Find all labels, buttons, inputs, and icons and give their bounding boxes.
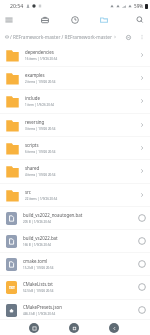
staticText: 20:54: [10, 2, 24, 9]
button[interactable]: include: [0, 90, 150, 114]
staticText: 1 item | 1/9/26 20:54: [25, 103, 54, 107]
staticText: build_vs2022.bat: [23, 235, 58, 241]
staticText: reversing: [25, 119, 45, 125]
staticText: TXT: [9, 286, 15, 290]
button[interactable]: shared: [0, 160, 150, 184]
button[interactable]: reversing: [0, 114, 150, 137]
staticText: examples: [25, 72, 45, 78]
staticText: / REFramework-master / REFramework-maste…: [10, 34, 112, 40]
button[interactable]: Menu: [0, 11, 18, 29]
button[interactable]: Select items: [122, 31, 134, 43]
staticText: build_vs2022_noautogen.bat: [23, 212, 83, 218]
button[interactable]: build_vs2022.bat: [0, 230, 150, 253]
staticText: shared: [25, 165, 40, 171]
staticText: 4 items | 1/9/26 20:54: [25, 173, 56, 177]
staticText: 52.5 kB | 1/9/26 20:54: [23, 289, 54, 293]
button[interactable]: dependencies: [0, 44, 150, 67]
button[interactable]: Search: [131, 11, 149, 29]
button[interactable]: Work profile: [36, 11, 54, 29]
staticText: cmake.toml: [23, 258, 48, 264]
staticText: CMakePresets.json: [23, 304, 62, 310]
button[interactable]: Home: [66, 320, 81, 335]
button[interactable]: Files: [95, 11, 113, 29]
staticText: include: [25, 95, 40, 101]
staticText: 166 B | 1/9/26 20:54: [23, 243, 52, 247]
staticText: 3 items | 1/9/26 20:54: [25, 127, 56, 131]
staticText: 2 items | 1/9/26 20:54: [25, 80, 56, 84]
button[interactable]: scripts: [0, 137, 150, 160]
button[interactable]: More options: [136, 31, 147, 42]
staticText: scripts: [25, 142, 39, 148]
staticText: src: [25, 189, 31, 195]
button[interactable]: cmake.toml: [0, 253, 150, 276]
button[interactable]: Recent: [66, 11, 84, 29]
staticText: 15.2 kB | 1/9/26 20:54: [23, 266, 54, 270]
staticText: 59%: [134, 3, 144, 9]
button[interactable]: CMakePresets.json: [0, 300, 150, 320]
staticText: dependencies: [25, 49, 54, 55]
button[interactable]: build_vs2022_noautogen.bat: [0, 207, 150, 230]
staticText: 16 items | 1/9/26 20:54: [25, 57, 58, 61]
staticText: 6 items | 1/9/26 20:54: [25, 150, 56, 154]
staticText: CMakeLists.txt: [23, 281, 53, 287]
staticText: 205 B | 1/9/26 20:54: [23, 220, 52, 224]
button[interactable]: TXT: [0, 276, 150, 300]
button[interactable]: examples: [0, 67, 150, 90]
button[interactable]: Recent apps: [26, 320, 41, 335]
staticText: 446.3 kB | 1/9/26 20:54: [23, 312, 56, 316]
button[interactable]: src: [0, 184, 150, 207]
staticText: 22 items | 1/9/26 20:54: [25, 197, 58, 201]
button[interactable]: Back: [106, 320, 121, 335]
